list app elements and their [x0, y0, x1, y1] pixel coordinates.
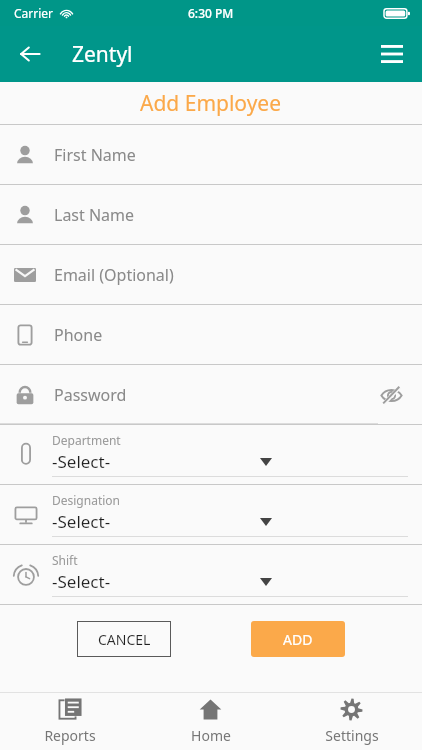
staticText: Last Name: [54, 204, 135, 226]
button[interactable]: Department: [0, 425, 422, 484]
button[interactable]: Phone: [0, 305, 422, 364]
button[interactable]: Back: [6, 30, 54, 78]
button[interactable]: Menu: [368, 30, 416, 78]
staticText: -Select-: [52, 510, 111, 533]
button[interactable]: Show password: [374, 378, 408, 412]
staticText: Add Employee: [140, 89, 282, 118]
staticText: Email (Optional): [54, 264, 174, 286]
staticText: Password: [54, 384, 127, 406]
button[interactable]: CANCEL: [77, 621, 171, 657]
button[interactable]: ADD: [251, 621, 345, 657]
staticText: Designation: [52, 492, 121, 508]
button[interactable]: Shift: [0, 545, 422, 604]
staticText: Settings: [325, 726, 379, 745]
button[interactable]: Home: [140, 693, 281, 750]
button[interactable]: Reports: [0, 693, 140, 750]
button[interactable]: First Name: [0, 125, 422, 184]
staticText: First Name: [54, 144, 136, 166]
button[interactable]: Password: [0, 365, 422, 424]
button[interactable]: Settings: [281, 693, 422, 750]
staticText: CANCEL: [98, 630, 151, 649]
staticText: Reports: [44, 726, 96, 745]
button[interactable]: Designation: [0, 485, 422, 544]
staticText: Phone: [54, 324, 103, 346]
staticText: -Select-: [52, 570, 111, 593]
button[interactable]: Email (Optional): [0, 245, 422, 304]
button[interactable]: Last Name: [0, 185, 422, 244]
staticText: Carrier: [14, 5, 54, 21]
staticText: Home: [191, 726, 231, 745]
staticText: 6:30 PM: [188, 5, 234, 21]
staticText: ADD: [283, 630, 313, 649]
staticText: Zentyl: [72, 40, 133, 69]
staticText: -Select-: [52, 450, 111, 473]
staticText: Department: [52, 432, 121, 448]
staticText: Shift: [52, 552, 78, 568]
